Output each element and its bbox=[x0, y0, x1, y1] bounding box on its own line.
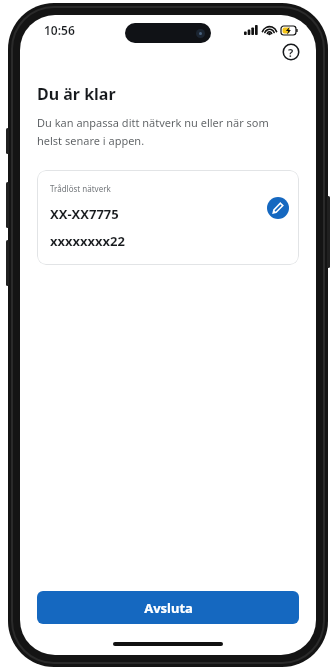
button[interactable]: Hjälp bbox=[276, 37, 306, 67]
button[interactable]: Avsluta bbox=[37, 591, 299, 624]
staticText: Trådlöst nätverk bbox=[50, 183, 111, 194]
staticText: Du kan anpassa ditt nätverk nu eller när… bbox=[37, 115, 294, 148]
staticText: 10:56 bbox=[44, 22, 75, 38]
staticText: XX-XX7775 bbox=[50, 205, 119, 223]
button[interactable]: Trådlöst nätverk bbox=[37, 170, 299, 265]
staticText: xxxxxxxx22 bbox=[50, 232, 125, 250]
staticText: Avsluta bbox=[144, 599, 193, 617]
button[interactable]: Redigera nätverk bbox=[267, 197, 289, 219]
staticText: ? bbox=[288, 45, 294, 60]
staticText: Du är klar bbox=[37, 83, 116, 105]
